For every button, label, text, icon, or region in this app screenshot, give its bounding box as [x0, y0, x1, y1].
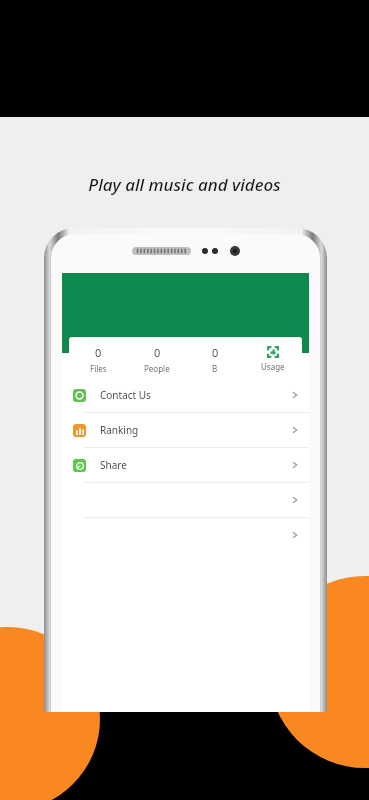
staticText: Usage [261, 361, 285, 372]
button[interactable] [62, 518, 309, 552]
staticText: Files [90, 363, 107, 374]
button[interactable]: Ranking [62, 413, 309, 447]
button[interactable]: Usage [244, 346, 302, 372]
staticText: 0 [95, 345, 102, 360]
staticText: Share [100, 458, 127, 472]
button[interactable]: 0 [69, 345, 128, 374]
button[interactable]: 0 [186, 345, 244, 374]
button[interactable]: Contact Us [62, 378, 309, 412]
staticText: Ranking [100, 423, 139, 437]
staticText: People [144, 363, 170, 374]
staticText: Contact Us [100, 388, 151, 402]
staticText: Play all music and videos [88, 173, 281, 196]
staticText: 0 [212, 345, 219, 360]
button[interactable]: 0 [128, 345, 186, 374]
staticText: 0 [154, 345, 161, 360]
button[interactable]: Share [62, 448, 309, 482]
staticText: B [212, 363, 218, 374]
button[interactable] [62, 483, 309, 517]
